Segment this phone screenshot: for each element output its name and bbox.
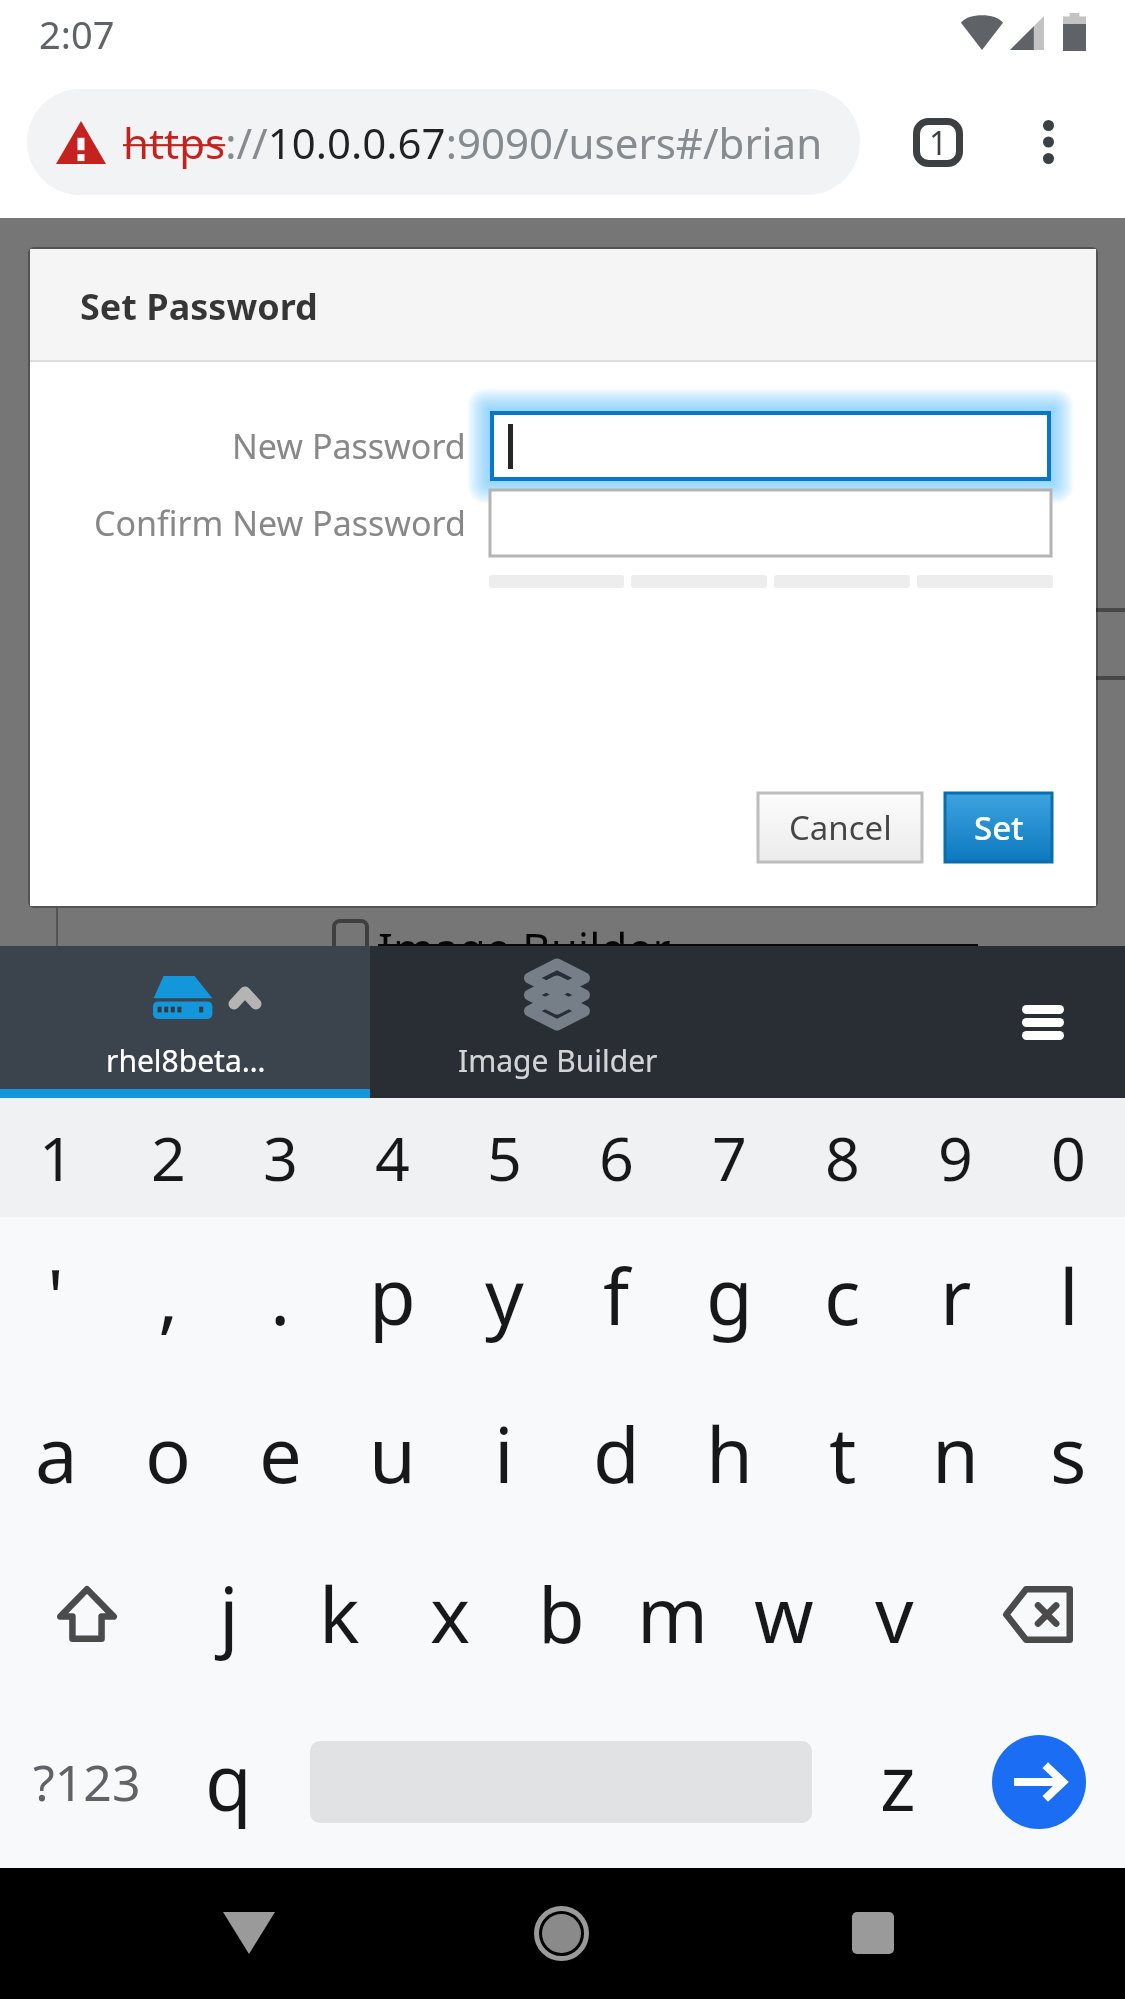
staticText: 4 (375, 1116, 410, 1199)
button[interactable]: ' (0, 1217, 112, 1375)
button[interactable]: u (336, 1375, 448, 1533)
button[interactable]: v (839, 1533, 950, 1695)
staticText: ?123 (33, 1748, 141, 1816)
button[interactable]: Cancel (758, 793, 922, 862)
staticText: 2 (151, 1116, 186, 1199)
staticText: . (270, 1244, 291, 1348)
button[interactable]: Menu (1002, 982, 1084, 1062)
button[interactable]: i (448, 1375, 560, 1533)
button[interactable]: d (560, 1375, 673, 1533)
button[interactable]: Shift (0, 1533, 173, 1695)
button[interactable]: Confirm New Password (490, 490, 1051, 556)
staticText: t (829, 1402, 857, 1506)
staticText: 5 (487, 1116, 522, 1199)
staticText: h (706, 1402, 753, 1506)
button[interactable]: Set (945, 793, 1052, 862)
staticText: i (494, 1402, 514, 1506)
button[interactable]: n (899, 1375, 1012, 1533)
button[interactable]: o (112, 1375, 224, 1533)
button[interactable]: s (1012, 1375, 1125, 1533)
button[interactable]: w (728, 1533, 839, 1695)
button[interactable]: Back (194, 1878, 304, 1988)
staticText: r (940, 1244, 972, 1348)
staticText: l (1059, 1244, 1079, 1348)
button[interactable]: 6 (560, 1098, 673, 1217)
button[interactable]: l (1012, 1217, 1125, 1375)
button[interactable]: q (173, 1695, 284, 1868)
staticText: https://10.0.0.67:9090/users#/brian (123, 114, 823, 171)
button[interactable]: x (395, 1533, 506, 1695)
staticText: 3 (263, 1116, 298, 1199)
button[interactable]: a (0, 1375, 112, 1533)
button[interactable]: t (786, 1375, 899, 1533)
button[interactable]: Delete (950, 1533, 1125, 1695)
staticText: Cancel (789, 805, 892, 850)
staticText: o (145, 1402, 191, 1506)
button[interactable]: 3 (224, 1098, 336, 1217)
button[interactable]: New Password (490, 411, 1051, 481)
staticText: j (219, 1562, 239, 1666)
button[interactable]: 1 (0, 1098, 112, 1217)
staticText: a (35, 1402, 78, 1506)
staticText: Set (974, 805, 1024, 850)
button[interactable]: 0 (1012, 1098, 1125, 1217)
button[interactable]: . (224, 1217, 336, 1375)
button[interactable]: 7 (673, 1098, 786, 1217)
staticText: m (637, 1562, 709, 1666)
button[interactable]: Recent apps (818, 1878, 928, 1988)
button[interactable]: g (673, 1217, 786, 1375)
staticText: 9 (938, 1116, 973, 1199)
staticText: e (259, 1402, 302, 1506)
button[interactable]: Go (992, 1735, 1086, 1829)
button[interactable]: h (673, 1375, 786, 1533)
button[interactable]: 9 (899, 1098, 1012, 1217)
button[interactable]: 4 (336, 1098, 448, 1217)
button[interactable]: https://10.0.0.67:9090/users#/brian (27, 89, 860, 195)
staticText: Image Builder (378, 918, 671, 978)
button[interactable]: , (112, 1217, 224, 1375)
staticText: 8 (825, 1116, 860, 1199)
staticText: v (875, 1562, 914, 1666)
button[interactable]: p (336, 1217, 448, 1375)
button[interactable]: 8 (786, 1098, 899, 1217)
staticText: g (706, 1244, 753, 1348)
button[interactable]: z (842, 1695, 953, 1868)
button[interactable]: m (617, 1533, 728, 1695)
staticText: , (158, 1244, 179, 1348)
staticText: 7 (712, 1116, 747, 1199)
staticText: f (603, 1244, 630, 1348)
staticText: 0 (1051, 1116, 1086, 1199)
staticText: s (1050, 1402, 1087, 1506)
staticText: 1 (39, 1116, 74, 1199)
staticText: q (205, 1730, 252, 1834)
button[interactable]: ?123 (0, 1695, 173, 1868)
button[interactable]: f (560, 1217, 673, 1375)
button[interactable]: j (173, 1533, 284, 1695)
button[interactable]: r (899, 1217, 1012, 1375)
button[interactable]: c (786, 1217, 899, 1375)
staticText: 1 (929, 121, 948, 165)
staticText: z (880, 1730, 916, 1834)
staticText: New Password (232, 423, 466, 469)
button[interactable]: k (284, 1533, 395, 1695)
staticText: Image Builder (458, 1040, 658, 1081)
button[interactable]: Home (506, 1878, 616, 1988)
staticText: d (593, 1402, 640, 1506)
button[interactable]: Space (284, 1695, 842, 1868)
staticText: u (369, 1402, 416, 1506)
staticText: 2:07 (39, 8, 115, 60)
staticText: b (538, 1562, 585, 1666)
button[interactable]: e (224, 1375, 336, 1533)
staticText: n (932, 1402, 979, 1506)
button[interactable] (0, 946, 370, 1098)
button[interactable]: 2 (112, 1098, 224, 1217)
staticText: c (824, 1244, 861, 1348)
staticText: y (485, 1244, 524, 1348)
button[interactable]: b (506, 1533, 617, 1695)
staticText: 6 (599, 1116, 634, 1199)
button[interactable]: 5 (448, 1098, 560, 1217)
button[interactable]: Tabs (896, 100, 980, 184)
button[interactable]: More options (1006, 100, 1090, 184)
button[interactable]: y (448, 1217, 560, 1375)
staticText: w (754, 1562, 814, 1666)
